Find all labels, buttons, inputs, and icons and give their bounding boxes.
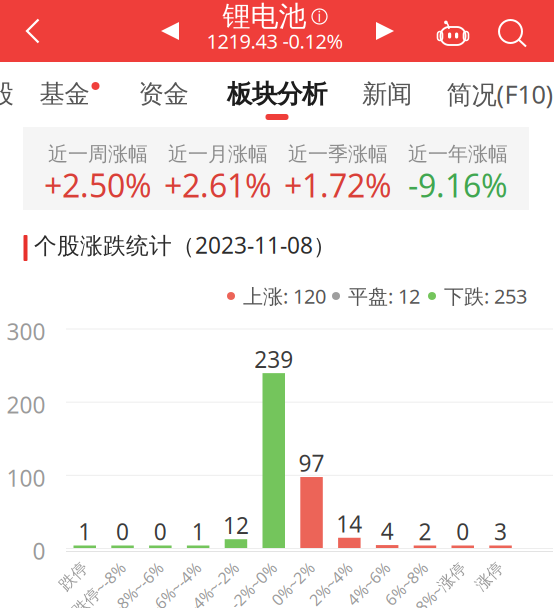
staticText: 2%~4%	[315, 600, 368, 608]
staticText: -9.16%	[408, 164, 508, 206]
staticText: 下跌: 253	[444, 283, 527, 309]
button[interactable]: 简况(F10)	[441, 62, 554, 120]
staticText: 4	[381, 516, 394, 546]
staticText: 239	[254, 344, 293, 374]
staticText: 8%~涨停	[419, 600, 482, 608]
button[interactable]: Search	[486, 3, 540, 65]
button[interactable]: 基金	[13, 62, 131, 120]
staticText: 200	[6, 390, 45, 420]
staticText: +1.72%	[284, 164, 392, 206]
staticText: 个股涨跌统计（2023-11-08）	[34, 230, 336, 260]
staticText: 近一年涨幅	[408, 142, 508, 166]
staticText: -6%~-4%	[154, 600, 217, 608]
staticText: 简况(F10)	[446, 77, 553, 111]
button[interactable]: 资金	[104, 62, 222, 120]
button[interactable]: 股	[0, 62, 60, 120]
staticText: 近一季涨幅	[288, 142, 388, 166]
staticText: +2.50%	[44, 164, 152, 206]
staticText: 6%~8%	[391, 600, 444, 608]
staticText: -4%~-2%	[192, 600, 255, 608]
staticText: 1219.43 -0.12%	[206, 28, 343, 54]
button[interactable]: Next symbol	[362, 0, 408, 62]
staticText: -8%~-6%	[116, 600, 179, 608]
staticText: i	[317, 6, 321, 26]
staticText: 0%~2%	[277, 600, 330, 608]
staticText: 近一月涨幅	[168, 142, 268, 166]
staticText: 基金	[39, 78, 89, 109]
staticText: 1	[78, 516, 91, 546]
staticText: 平盘: 12	[348, 283, 420, 309]
staticText: 近一周涨幅	[48, 142, 148, 166]
staticText: 0	[116, 516, 129, 546]
staticText: 0	[154, 516, 167, 546]
staticText: 板块分析	[227, 78, 327, 109]
button[interactable]: 板块分析	[218, 62, 336, 120]
staticText: 上涨: 120	[243, 283, 326, 309]
staticText: 锂电池	[222, 0, 306, 34]
staticText: 股	[0, 78, 13, 109]
button[interactable]: Previous symbol	[147, 0, 193, 62]
button[interactable]: Back	[7, 0, 59, 62]
staticText: 2	[418, 516, 431, 546]
staticText: 300	[6, 316, 45, 346]
staticText: 1	[192, 516, 205, 546]
staticText: 跌停~-8%	[73, 600, 141, 608]
staticText: +2.61%	[164, 164, 272, 206]
staticText: 14	[336, 509, 362, 539]
staticText: 100	[6, 463, 45, 493]
staticText: 0	[32, 536, 45, 566]
staticText: 资金	[138, 78, 188, 109]
staticText: 跌停	[72, 601, 104, 608]
staticText: 新闻	[362, 78, 412, 109]
staticText: -2%~0%	[235, 600, 293, 608]
staticText: 12	[223, 510, 249, 540]
button[interactable]: Assistant	[426, 2, 480, 64]
staticText: 97	[298, 448, 324, 478]
staticText: 3	[494, 516, 507, 546]
staticText: 0	[456, 516, 469, 546]
staticText: 4%~6%	[353, 600, 406, 608]
button[interactable]: 新闻	[328, 62, 446, 120]
